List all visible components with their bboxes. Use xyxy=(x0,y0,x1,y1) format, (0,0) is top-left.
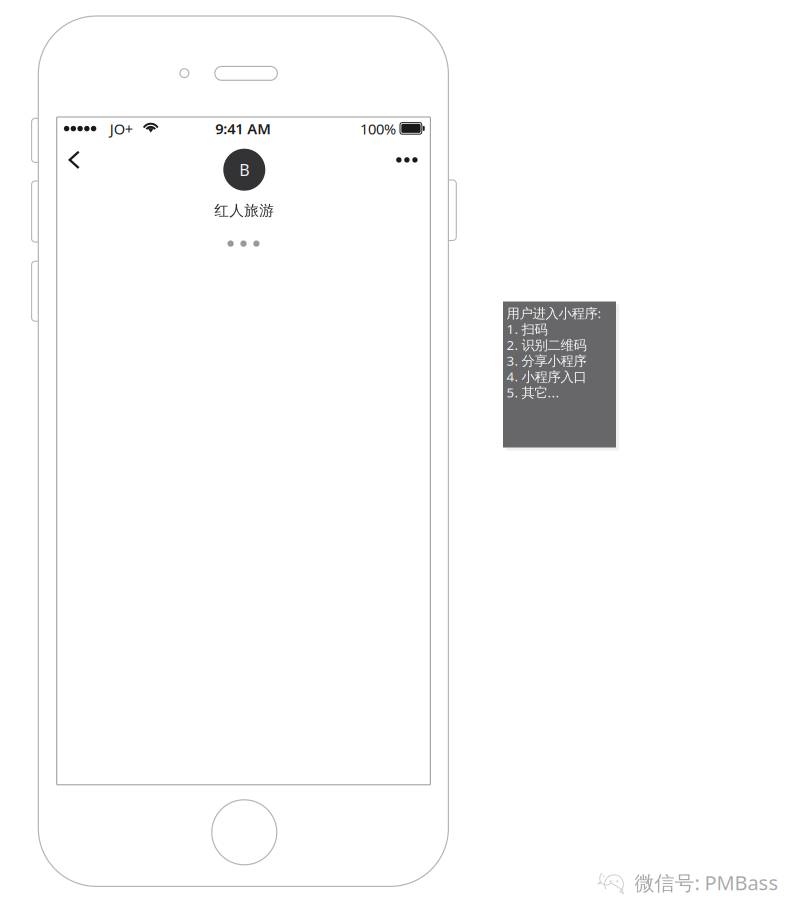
staticText: JO+ xyxy=(110,119,133,139)
button[interactable]: Mini program avatar xyxy=(223,149,265,191)
staticText: 100% xyxy=(360,119,396,139)
staticText: 微信号: PMBass xyxy=(634,869,778,896)
staticText: 9:41 AM xyxy=(215,119,271,138)
button[interactable]: More options xyxy=(390,147,424,173)
staticText: 红人旅游 xyxy=(214,202,274,220)
button[interactable]: Home xyxy=(212,800,277,865)
staticText: 用户进入小程序: xyxy=(506,304,601,322)
staticText: B xyxy=(239,159,249,180)
staticText: 4. 小程序入口 xyxy=(506,368,586,385)
staticText: 3. 分享小程序 xyxy=(506,352,586,369)
staticText: 5. 其它... xyxy=(506,383,559,401)
button[interactable]: Back xyxy=(59,145,89,175)
staticText: 1. 扫码 xyxy=(506,320,547,338)
staticText: 2. 识别二维码 xyxy=(506,336,586,354)
